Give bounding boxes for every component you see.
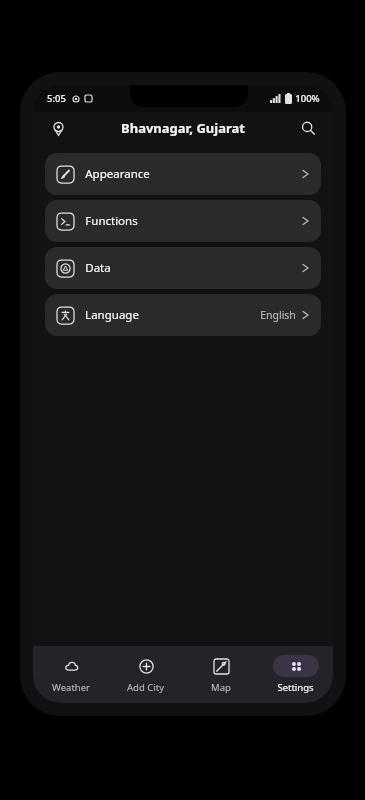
button[interactable]: Location [43,113,73,143]
staticText: 5:05 [47,92,66,105]
button[interactable]: Data [45,247,321,289]
button[interactable]: Search [293,113,323,143]
staticText: Language [85,307,139,323]
staticText: Add City [127,681,164,694]
button[interactable]: Map [183,646,258,703]
staticText: Bhavnagar, Gujarat [121,119,245,137]
staticText: Map [211,681,231,694]
staticText: Functions [85,213,138,229]
button[interactable]: Language [45,294,321,336]
staticText: Settings [277,681,314,694]
staticText: English [260,308,296,322]
button[interactable]: Functions [45,200,321,242]
staticText: 100% [295,92,320,105]
button[interactable]: Settings [258,646,333,703]
button[interactable]: Appearance [45,153,321,195]
staticText: Data [85,260,111,276]
staticText: Appearance [85,166,150,182]
button[interactable]: Weather [33,646,108,703]
button[interactable]: Add City [108,646,183,703]
staticText: Weather [52,681,90,694]
